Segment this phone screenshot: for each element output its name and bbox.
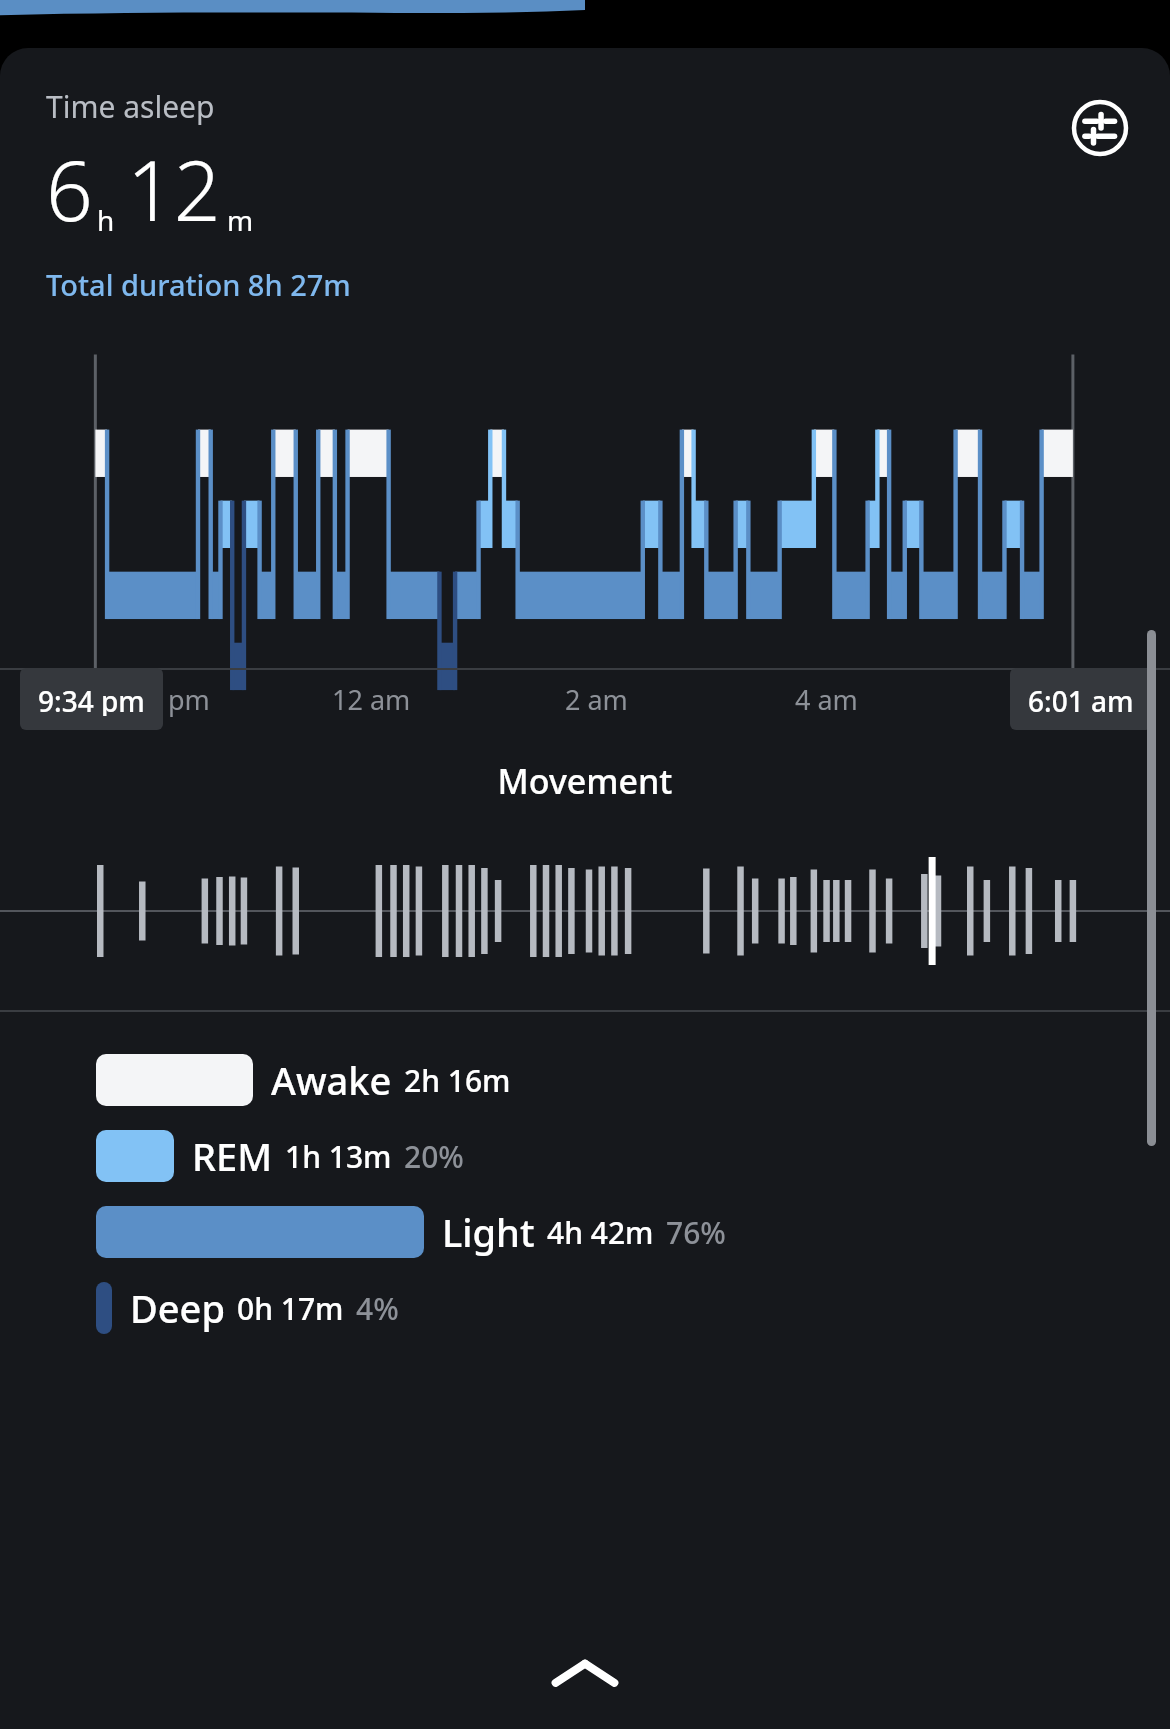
staticText: 76% xyxy=(666,1212,726,1253)
staticText: Light xyxy=(442,1206,535,1258)
staticText: Awake xyxy=(271,1054,392,1106)
staticText: REM xyxy=(192,1130,273,1182)
button[interactable]: Adjust sleep settings xyxy=(1072,100,1128,156)
staticText: 4 am xyxy=(795,681,858,718)
staticText: Deep xyxy=(130,1282,225,1334)
staticText: 12 xyxy=(127,133,221,245)
button[interactable]: Deep xyxy=(96,1282,1146,1334)
staticText: m xyxy=(227,201,254,239)
staticText: Total duration 8h 27m xyxy=(46,265,351,304)
staticText: 6:01 am xyxy=(1028,682,1134,716)
staticText: h xyxy=(97,201,115,239)
staticText: 20% xyxy=(404,1136,464,1177)
staticText: Movement xyxy=(0,758,1170,804)
staticText: 2h 16m xyxy=(404,1060,511,1101)
staticText: 0h 17m xyxy=(237,1288,344,1329)
staticText: 10 pm xyxy=(130,681,210,718)
staticText: 6 xyxy=(46,133,93,245)
button[interactable]: Collapse xyxy=(0,1619,1170,1729)
staticText: 1h 13m xyxy=(285,1136,392,1177)
button[interactable]: REM xyxy=(96,1130,1146,1182)
staticText: 4% xyxy=(356,1288,399,1329)
button[interactable]: Awake xyxy=(96,1054,1146,1106)
staticText: 2 am xyxy=(565,681,628,718)
button[interactable]: Sleep stages hypnogram xyxy=(0,348,1170,668)
staticText: 9:34 pm xyxy=(38,682,145,716)
button[interactable]: Movement during sleep xyxy=(0,856,1170,966)
staticText: 12 am xyxy=(332,681,411,718)
button[interactable]: Light xyxy=(96,1206,1146,1258)
staticText: Time asleep xyxy=(46,86,215,127)
staticText: 4h 42m xyxy=(547,1212,654,1253)
